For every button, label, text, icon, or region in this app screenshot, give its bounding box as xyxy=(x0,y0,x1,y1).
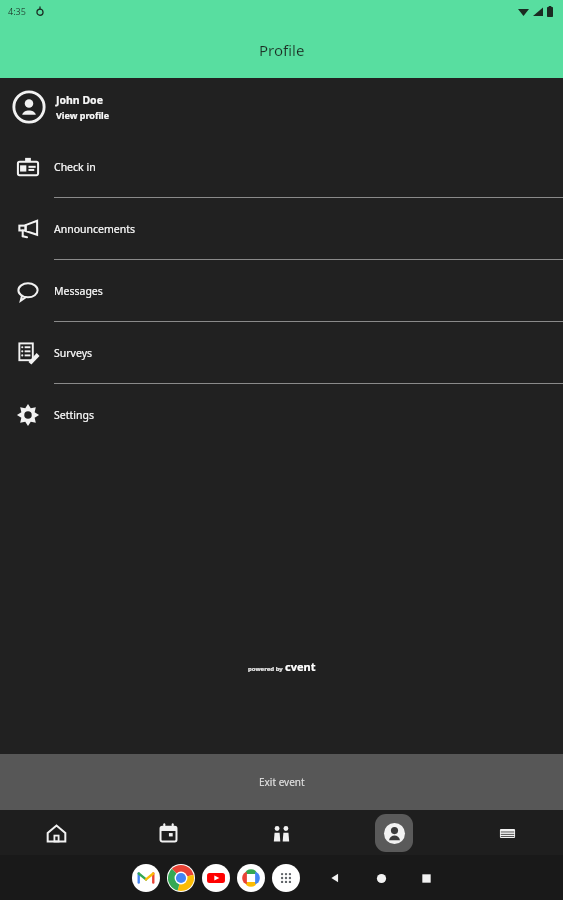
other: Back xyxy=(328,871,342,885)
button[interactable]: Settings xyxy=(0,384,563,446)
staticText: Messages xyxy=(54,284,103,298)
button[interactable]: Check in xyxy=(0,136,563,198)
button[interactable]: John Doe xyxy=(0,78,563,136)
staticText: Settings xyxy=(54,408,94,422)
staticText: Check in xyxy=(54,160,96,174)
staticText: Exit event xyxy=(259,775,305,789)
button[interactable]: Surveys xyxy=(0,322,563,384)
staticText: Profile xyxy=(259,40,305,60)
staticText: powered by xyxy=(248,665,283,673)
button[interactable]: Exit event xyxy=(0,754,563,810)
button[interactable]: Messages xyxy=(0,260,563,322)
staticText: John Doe xyxy=(56,93,103,107)
other: Home xyxy=(376,873,387,884)
staticText: 4:35 xyxy=(8,5,26,17)
button[interactable]: Profile xyxy=(337,810,450,855)
other: Recents xyxy=(421,873,432,884)
button[interactable]: More xyxy=(450,810,563,855)
button[interactable]: Schedule xyxy=(112,810,224,855)
button[interactable]: Announcements xyxy=(0,198,563,260)
staticText: Announcements xyxy=(54,222,136,236)
button[interactable]: Attendees xyxy=(224,810,337,855)
staticText: Surveys xyxy=(54,346,93,360)
staticText: cvent xyxy=(285,659,316,674)
button[interactable]: Home xyxy=(0,810,112,855)
staticText: View profile xyxy=(56,109,110,121)
